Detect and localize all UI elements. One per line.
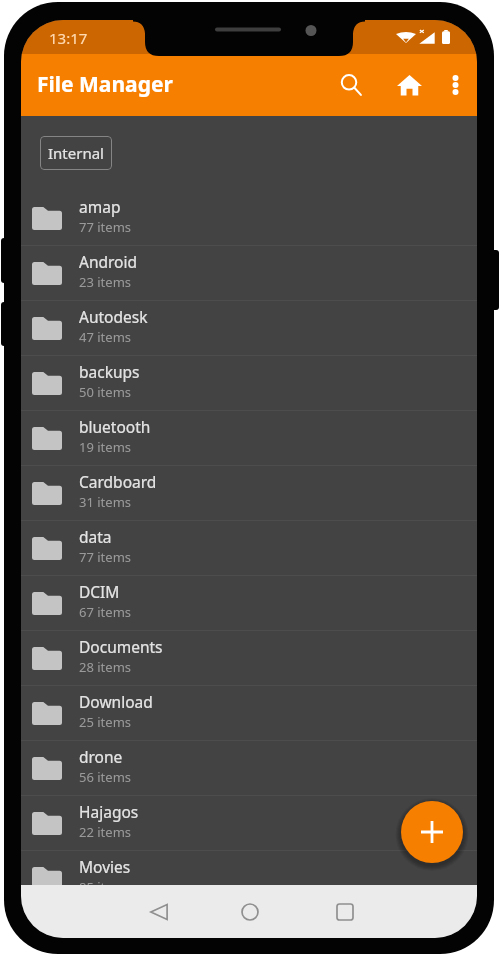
button[interactable]: bluetooth [21, 411, 477, 465]
button[interactable]: data [21, 521, 477, 575]
button[interactable]: Cardboard [21, 466, 477, 520]
staticText: drone [79, 746, 123, 767]
button[interactable]: Home [385, 61, 433, 109]
staticText: Cardboard [79, 471, 157, 492]
staticText: 25 items [79, 713, 132, 731]
staticText: 22 items [79, 823, 132, 841]
staticText: Movies [79, 856, 131, 877]
button[interactable]: drone [21, 741, 477, 795]
staticText: 19 items [79, 438, 132, 456]
staticText: 67 items [79, 603, 132, 621]
button[interactable]: Documents [21, 631, 477, 685]
staticText: 50 items [79, 383, 132, 401]
button[interactable]: More options [433, 63, 477, 107]
button[interactable]: Search [327, 61, 375, 109]
button[interactable]: DCIM [21, 576, 477, 630]
staticText: 31 items [79, 493, 132, 511]
button[interactable]: Back [131, 885, 187, 938]
staticText: amap [79, 196, 121, 217]
staticText: Download [79, 691, 153, 712]
staticText: 85 items [79, 878, 132, 885]
button[interactable]: amap [21, 191, 477, 245]
staticText: File Manager [37, 70, 173, 99]
staticText: bluetooth [79, 416, 151, 437]
staticText: Autodesk [79, 306, 148, 327]
button[interactable]: Home [222, 885, 278, 938]
staticText: 77 items [79, 548, 132, 566]
button[interactable]: Recent apps [317, 885, 373, 938]
staticText: backups [79, 361, 140, 382]
button[interactable]: Hajagos [21, 796, 477, 850]
staticText: DCIM [79, 581, 120, 602]
button[interactable]: Internal [40, 136, 112, 170]
staticText: Hajagos [79, 801, 139, 822]
staticText: Android [79, 251, 138, 272]
staticText: 56 items [79, 768, 132, 786]
button[interactable]: backups [21, 356, 477, 410]
staticText: Documents [79, 636, 163, 657]
staticText: 77 items [79, 218, 132, 236]
staticText: 47 items [79, 328, 132, 346]
button[interactable]: Download [21, 686, 477, 740]
button[interactable]: Autodesk [21, 301, 477, 355]
staticText: 13:17 [49, 28, 88, 48]
staticText: data [79, 526, 112, 547]
staticText: 28 items [79, 658, 132, 676]
staticText: Internal [48, 143, 104, 163]
button[interactable]: Android [21, 246, 477, 300]
button[interactable]: Add [401, 801, 463, 863]
button[interactable]: Movies [21, 851, 477, 885]
staticText: 23 items [79, 273, 132, 291]
